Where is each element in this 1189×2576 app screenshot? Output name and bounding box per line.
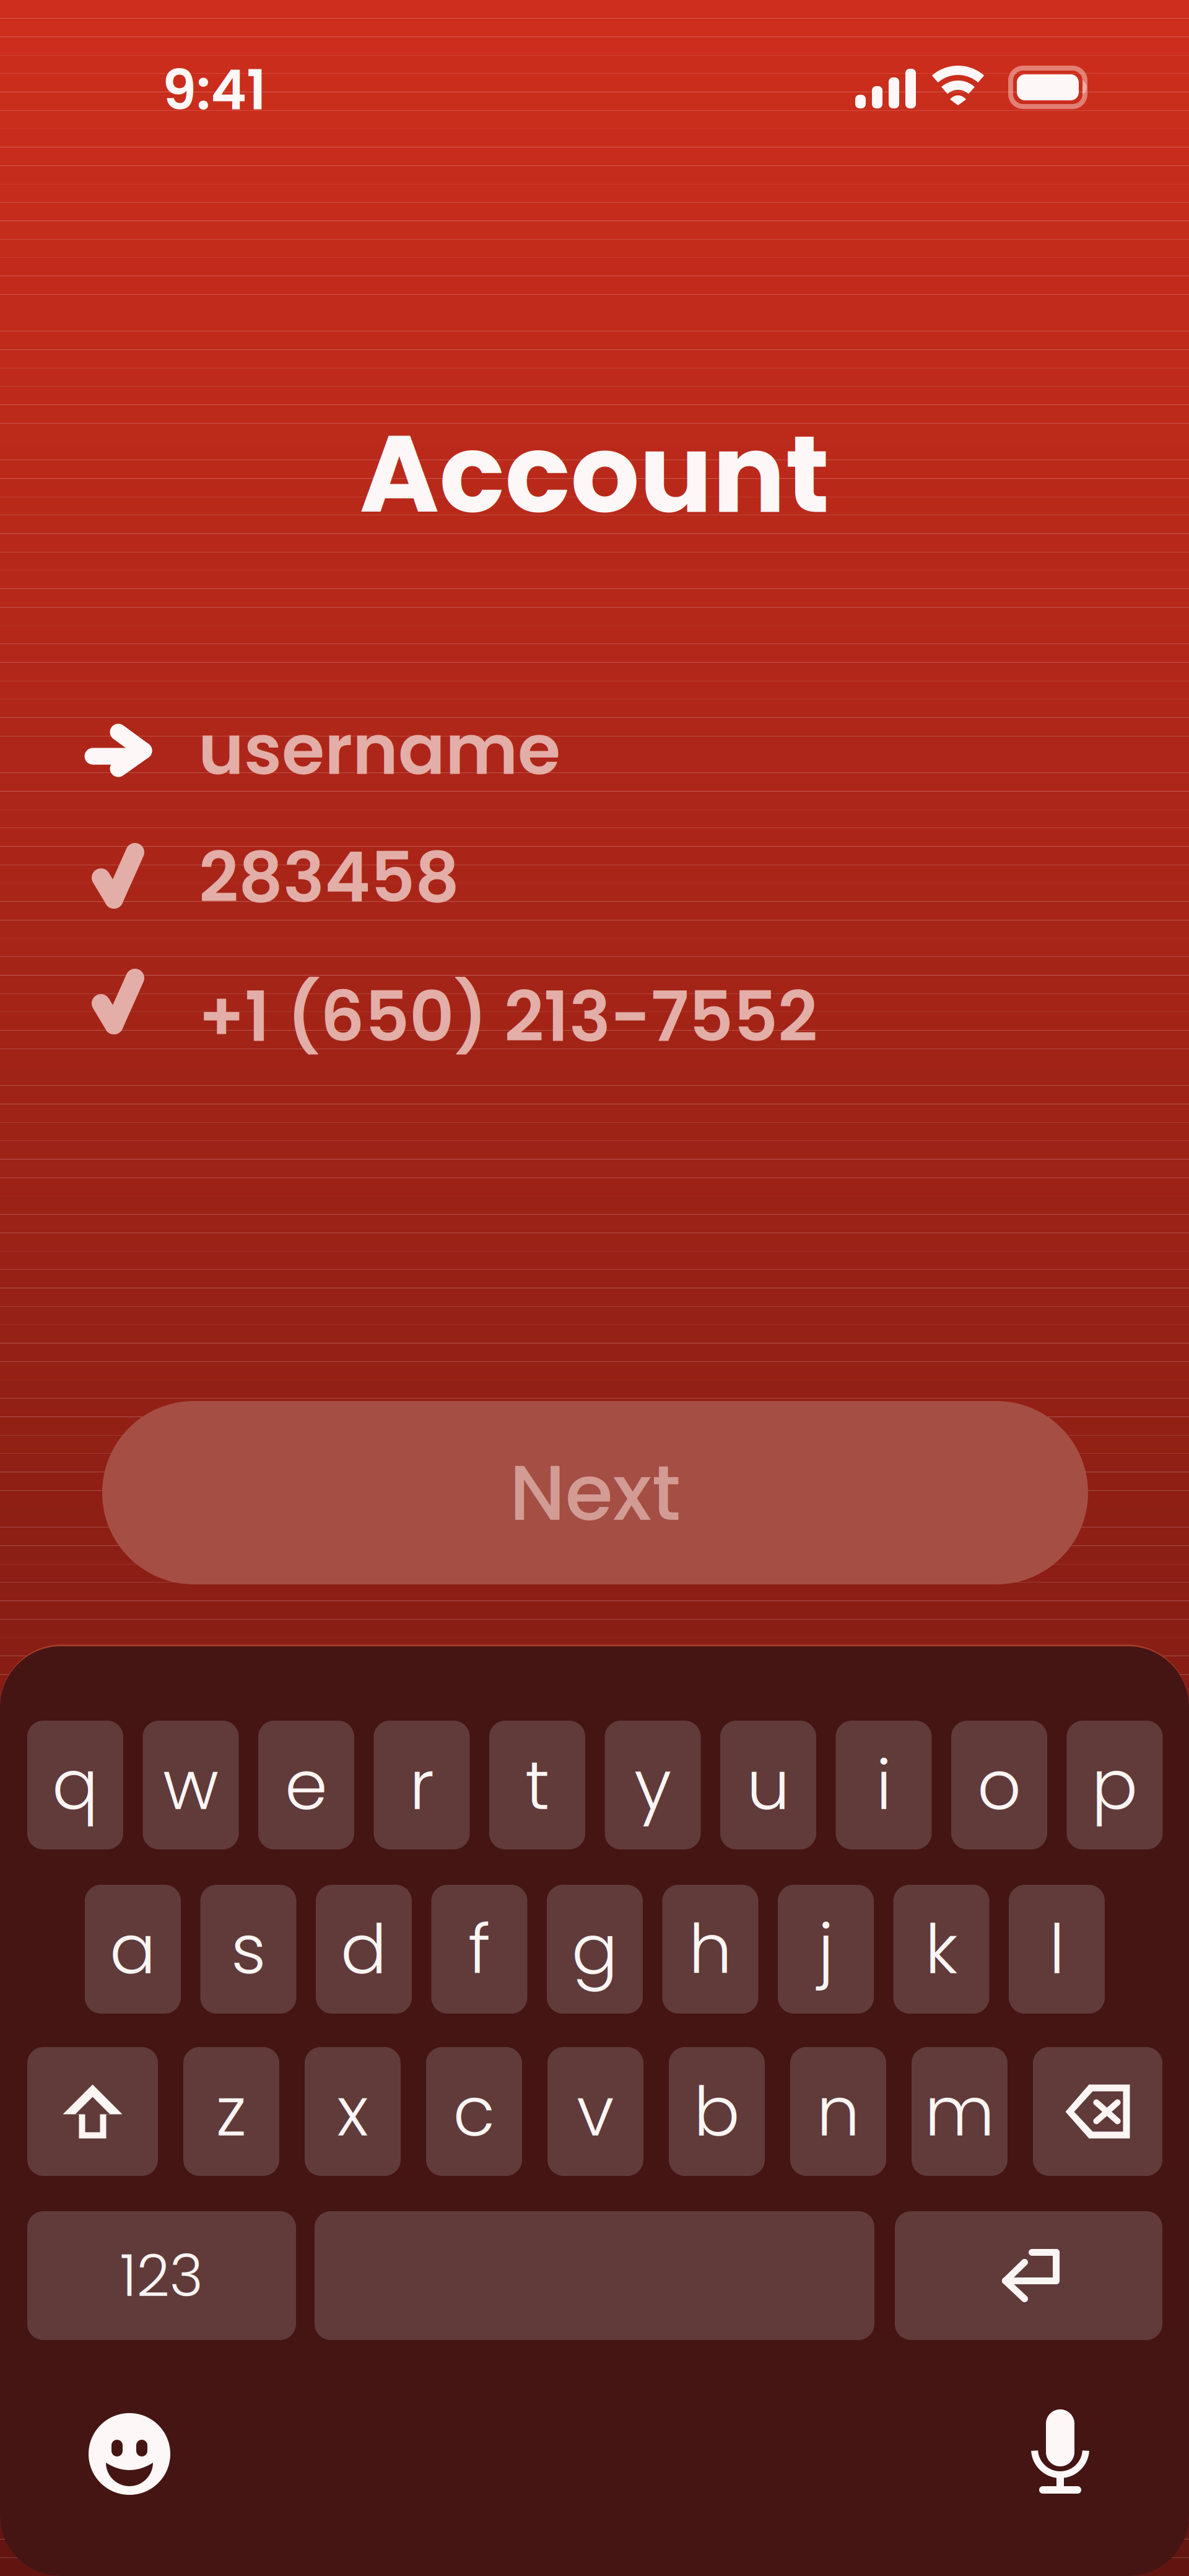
button[interactable]: s — [200, 1885, 296, 2014]
staticText: q — [52, 1737, 98, 1833]
staticText: h — [689, 1901, 732, 1997]
button[interactable]: h — [662, 1885, 758, 2014]
staticText: Account — [359, 398, 830, 550]
staticText: e — [285, 1737, 328, 1833]
button[interactable]: q — [27, 1721, 123, 1849]
button[interactable]: e — [258, 1721, 354, 1849]
button[interactable]: w — [143, 1721, 239, 1849]
staticText: r — [409, 1737, 434, 1833]
staticText: p — [1091, 1737, 1138, 1833]
button[interactable]: b — [669, 2047, 765, 2176]
button[interactable]: m — [912, 2047, 1008, 2176]
button[interactable]: r — [374, 1721, 470, 1849]
button[interactable]: t — [489, 1721, 585, 1849]
button[interactable]: 123 — [27, 2211, 296, 2340]
button[interactable]: v — [547, 2047, 643, 2176]
staticText: w — [163, 1737, 219, 1833]
button[interactable]: username — [84, 716, 1087, 809]
button[interactable]: f — [431, 1885, 527, 2014]
staticText: a — [110, 1901, 156, 1997]
button[interactable]: a — [85, 1885, 181, 2014]
staticText: n — [817, 2063, 860, 2159]
button[interactable]: o — [951, 1721, 1047, 1849]
button[interactable]: Return — [895, 2211, 1162, 2340]
staticText: Next — [509, 1438, 681, 1547]
button[interactable]: k — [893, 1885, 989, 2014]
button[interactable]: y — [605, 1721, 701, 1849]
button[interactable]: +1 (650) 213-7552 — [92, 968, 1095, 1061]
staticText: c — [453, 2063, 495, 2159]
staticText: username — [198, 701, 560, 798]
button[interactable]: Shift — [27, 2047, 158, 2176]
staticText: s — [231, 1901, 266, 1997]
staticText: o — [977, 1737, 1021, 1833]
button[interactable]: u — [720, 1721, 816, 1849]
button[interactable]: g — [547, 1885, 643, 2014]
staticText: f — [468, 1901, 490, 1997]
button[interactable]: n — [790, 2047, 886, 2176]
button[interactable]: space — [315, 2211, 874, 2340]
staticText: v — [577, 2063, 614, 2159]
staticText: t — [525, 1737, 549, 1833]
staticText: b — [694, 2063, 740, 2159]
staticText: g — [572, 1901, 618, 1997]
staticText: +1 (650) 213-7552 — [198, 968, 817, 1065]
staticText: l — [1049, 1901, 1065, 1997]
button[interactable]: Delete — [1033, 2047, 1162, 2176]
staticText: x — [337, 2063, 368, 2159]
staticText: m — [925, 2063, 995, 2159]
button[interactable]: i — [836, 1721, 932, 1849]
button[interactable]: p — [1067, 1721, 1163, 1849]
staticText: 283458 — [199, 829, 459, 926]
button[interactable]: Next — [102, 1401, 1088, 1584]
button[interactable]: x — [305, 2047, 401, 2176]
button[interactable]: l — [1009, 1885, 1105, 2014]
staticText: i — [876, 1737, 891, 1833]
staticText: y — [634, 1737, 671, 1833]
button[interactable]: z — [183, 2047, 279, 2176]
staticText: 9:41 — [162, 52, 266, 128]
staticText: z — [216, 2063, 246, 2159]
staticText: u — [747, 1737, 790, 1833]
staticText: d — [341, 1901, 387, 1997]
button[interactable]: Dictation — [1030, 2407, 1090, 2497]
button[interactable]: j — [778, 1885, 874, 2014]
staticText: j — [818, 1901, 834, 1997]
button[interactable]: Emoji — [89, 2413, 170, 2495]
button[interactable]: c — [426, 2047, 522, 2176]
button[interactable]: 283458 — [92, 842, 1095, 935]
staticText: 123 — [120, 2235, 203, 2316]
staticText: k — [925, 1901, 958, 1997]
button[interactable]: d — [316, 1885, 412, 2014]
